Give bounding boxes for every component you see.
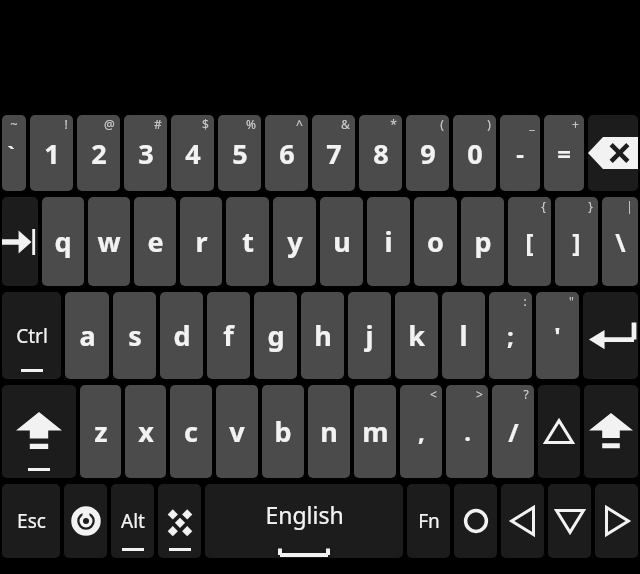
staticText: g — [267, 317, 285, 354]
staticText: ' — [554, 319, 561, 352]
button[interactable]: n — [308, 385, 350, 478]
button[interactable]: | — [602, 197, 638, 286]
button[interactable]: $ — [171, 115, 214, 191]
staticText: v — [229, 413, 245, 450]
button[interactable]: m — [354, 385, 396, 478]
button[interactable]: < — [400, 385, 442, 478]
button[interactable]: Settings — [64, 484, 107, 558]
staticText: l — [459, 317, 468, 354]
button[interactable]: a — [65, 292, 109, 379]
button[interactable]: Alt — [111, 484, 154, 558]
staticText: p — [474, 223, 492, 260]
button[interactable]: e — [134, 197, 176, 286]
staticText: c — [184, 413, 198, 450]
button[interactable]: ! — [30, 115, 73, 191]
button[interactable]: ? — [492, 385, 534, 478]
button[interactable]: " — [536, 292, 579, 379]
button[interactable]: f — [207, 292, 250, 379]
button[interactable]: Left — [501, 484, 544, 558]
button[interactable]: Enter — [583, 292, 638, 379]
button[interactable]: @ — [77, 115, 120, 191]
staticText: ^ — [296, 116, 303, 132]
button[interactable]: ( — [406, 115, 449, 191]
button[interactable]: } — [555, 197, 598, 286]
button[interactable]: % — [218, 115, 261, 191]
button[interactable]: * — [359, 115, 402, 191]
button[interactable]: Fn — [407, 484, 450, 558]
button[interactable]: i — [367, 197, 410, 286]
staticText: ` — [7, 140, 15, 167]
button[interactable]: Home — [454, 484, 497, 558]
button[interactable]: + — [544, 115, 584, 191]
button[interactable]: Shift — [584, 385, 638, 478]
staticText: English — [265, 499, 344, 530]
button[interactable]: k — [395, 292, 438, 379]
staticText: % — [246, 116, 256, 132]
button[interactable]: & — [312, 115, 355, 191]
button[interactable]: p — [461, 197, 504, 286]
button[interactable]: Esc — [2, 484, 60, 558]
button[interactable]: d — [160, 292, 203, 379]
staticText: w — [97, 223, 121, 260]
staticText: ( — [440, 116, 444, 132]
staticText: ; — [507, 319, 514, 352]
button[interactable]: ^ — [265, 115, 308, 191]
staticText: u — [333, 223, 351, 260]
button[interactable]: b — [262, 385, 304, 478]
staticText: Ctrl — [16, 323, 48, 349]
staticText: b — [274, 413, 292, 450]
staticText: e — [147, 223, 164, 260]
button[interactable]: Space English — [205, 484, 403, 558]
staticText: h — [314, 317, 332, 354]
staticText: , — [418, 415, 425, 448]
button[interactable]: g — [254, 292, 297, 379]
staticText: { — [541, 198, 546, 214]
staticText: \ — [615, 225, 626, 259]
button[interactable]: u — [320, 197, 363, 286]
staticText: & — [341, 116, 350, 132]
staticText: o — [427, 223, 444, 260]
button[interactable]: Shift — [2, 385, 76, 478]
button[interactable]: v — [216, 385, 258, 478]
staticText: j — [365, 317, 374, 354]
staticText: ? — [523, 386, 529, 402]
button[interactable]: o — [414, 197, 457, 286]
button[interactable]: Backspace — [588, 115, 638, 191]
button[interactable]: : — [489, 292, 532, 379]
button[interactable]: _ — [500, 115, 540, 191]
staticText: 7 — [326, 135, 342, 172]
staticText: / — [508, 415, 519, 449]
button[interactable]: y — [273, 197, 316, 286]
staticText: > — [476, 386, 483, 402]
button[interactable]: w — [88, 197, 130, 286]
button[interactable]: # — [124, 115, 167, 191]
button[interactable]: h — [301, 292, 344, 379]
button[interactable]: q — [42, 197, 84, 286]
staticText: $ — [202, 116, 209, 132]
staticText: = — [557, 137, 571, 170]
button[interactable]: Symbols — [158, 484, 201, 558]
button[interactable]: Ctrl — [2, 292, 61, 379]
staticText: t — [242, 223, 254, 260]
staticText: r — [195, 223, 208, 260]
button[interactable]: > — [446, 385, 488, 478]
button[interactable]: s — [113, 292, 156, 379]
staticText: 2 — [91, 135, 107, 172]
staticText: 5 — [232, 135, 248, 172]
button[interactable]: l — [442, 292, 485, 379]
button[interactable]: t — [226, 197, 269, 286]
button[interactable]: z — [80, 385, 121, 478]
staticText: d — [173, 317, 191, 354]
button[interactable]: Right — [595, 484, 638, 558]
button[interactable]: { — [508, 197, 551, 286]
button[interactable]: x — [125, 385, 166, 478]
button[interactable]: Down — [548, 484, 591, 558]
button[interactable]: j — [348, 292, 391, 379]
staticText: 3 — [138, 135, 154, 172]
button[interactable]: ) — [453, 115, 496, 191]
button[interactable]: Up — [538, 385, 580, 478]
button[interactable]: ~ — [2, 115, 26, 191]
button[interactable]: Tab — [2, 197, 38, 286]
button[interactable]: r — [180, 197, 222, 286]
button[interactable]: c — [170, 385, 212, 478]
